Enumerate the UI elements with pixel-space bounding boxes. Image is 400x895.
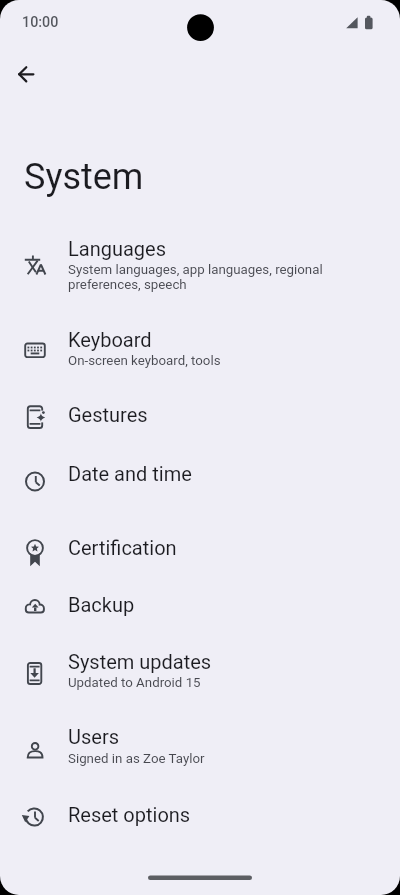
button[interactable] bbox=[10, 58, 43, 91]
button[interactable]: Gestures bbox=[0, 390, 400, 448]
button[interactable]: System updates bbox=[0, 639, 400, 715]
staticText: System bbox=[24, 156, 144, 198]
staticText: Backup bbox=[68, 593, 135, 616]
button[interactable]: Certification bbox=[0, 523, 400, 581]
staticText: Reset options bbox=[68, 803, 191, 826]
staticText: Updated to Android 15 bbox=[68, 675, 201, 691]
staticText: Date and time bbox=[68, 462, 192, 485]
button[interactable]: Keyboard bbox=[0, 315, 400, 390]
staticText: Signed in as Zoe Taylor bbox=[68, 751, 205, 767]
staticText: System updates bbox=[68, 650, 212, 673]
staticText: Users bbox=[68, 725, 119, 748]
staticText: Keyboard bbox=[68, 328, 152, 351]
button[interactable]: Users bbox=[0, 715, 400, 791]
staticText: Languages bbox=[68, 237, 166, 260]
button[interactable]: Backup bbox=[0, 581, 400, 639]
staticText: Gestures bbox=[68, 403, 148, 426]
button[interactable]: Reset options bbox=[0, 791, 400, 848]
button[interactable]: Languages bbox=[0, 225, 400, 315]
staticText: 10:00 bbox=[22, 14, 59, 31]
button[interactable]: Date and time bbox=[0, 448, 400, 506]
staticText: On-screen keyboard, tools bbox=[68, 353, 221, 369]
staticText: Certification bbox=[68, 536, 177, 559]
staticText: System languages, app languages, regiona… bbox=[68, 262, 323, 292]
